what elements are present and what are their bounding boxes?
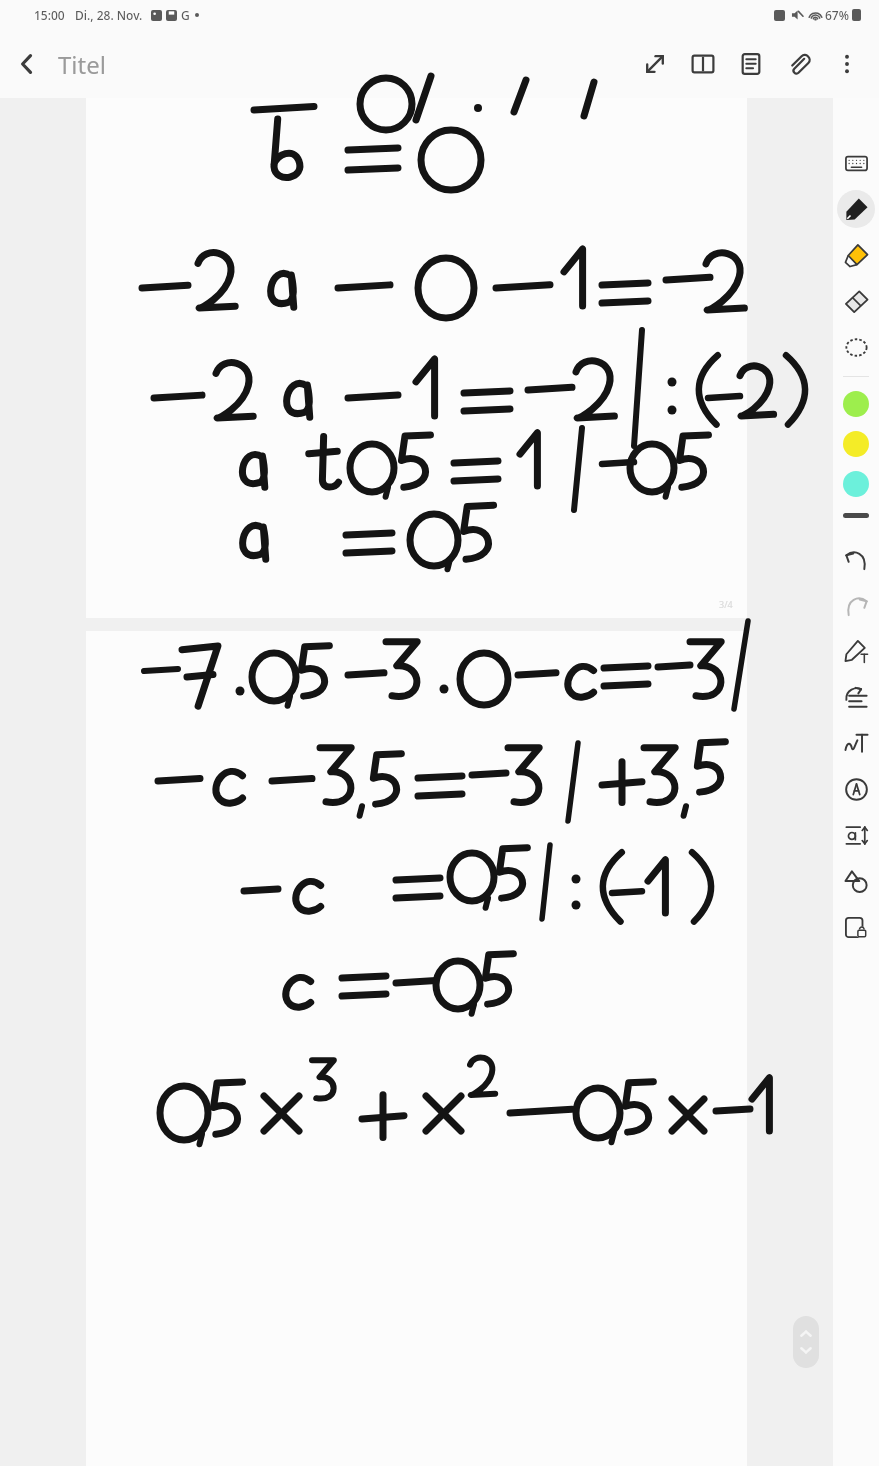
button[interactable]: Lock bbox=[833, 904, 879, 950]
button[interactable]: Book view bbox=[679, 40, 727, 88]
button[interactable]: Eraser bbox=[833, 278, 879, 324]
button[interactable]: More options bbox=[823, 40, 871, 88]
staticText: Titel bbox=[58, 48, 106, 81]
staticText: 15:00 bbox=[34, 7, 65, 23]
button[interactable]: Keyboard bbox=[833, 140, 879, 186]
button[interactable]: Notes bbox=[727, 40, 775, 88]
button[interactable]: Convert to text bbox=[833, 720, 879, 766]
button[interactable]: Expand bbox=[631, 40, 679, 88]
button[interactable]: Shapes bbox=[833, 858, 879, 904]
button[interactable]: Align bbox=[833, 674, 879, 720]
button[interactable]: Redo bbox=[833, 582, 879, 628]
button[interactable]: Colour bbox=[843, 431, 869, 457]
button[interactable] bbox=[843, 513, 869, 518]
button[interactable]: 3/4 bbox=[86, 98, 747, 618]
button[interactable]: Lasso select bbox=[833, 324, 879, 370]
button[interactable]: Text size bbox=[833, 812, 879, 858]
button[interactable]: Undo bbox=[833, 536, 879, 582]
staticText: G bbox=[181, 7, 190, 23]
button[interactable]: Pen settings bbox=[833, 628, 879, 674]
staticText: 3/4 bbox=[719, 598, 733, 610]
button[interactable]: Back bbox=[0, 37, 54, 91]
button[interactable]: Colour bbox=[843, 391, 869, 417]
button[interactable]: Pen bbox=[833, 186, 879, 232]
staticText: 67% bbox=[825, 7, 849, 23]
button[interactable]: Titel bbox=[54, 42, 110, 87]
button[interactable]: Scroll bbox=[793, 1316, 819, 1368]
staticText: Di., 28. Nov. bbox=[75, 7, 143, 23]
button[interactable]: Highlighter bbox=[833, 232, 879, 278]
button[interactable] bbox=[86, 631, 747, 1466]
button[interactable]: Shape recognition bbox=[833, 766, 879, 812]
button[interactable]: Attach bbox=[775, 40, 823, 88]
button[interactable]: Colour bbox=[843, 471, 869, 497]
